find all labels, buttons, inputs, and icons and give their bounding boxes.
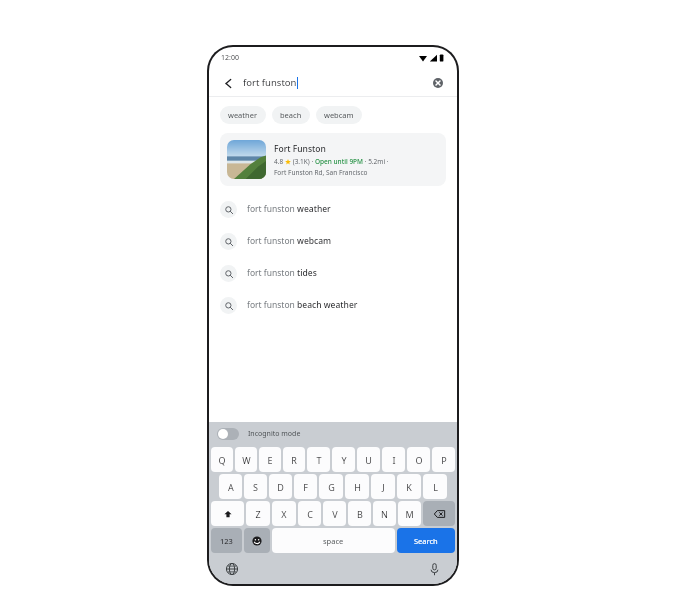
button[interactable]: C (298, 501, 321, 526)
button[interactable]: fort funston weather (209, 193, 457, 225)
staticText: fort funston tides (247, 267, 317, 279)
staticText: Z (255, 508, 261, 520)
staticText: webcam (324, 110, 354, 120)
button[interactable]: Y (332, 447, 355, 472)
staticText: Fort Funston (274, 143, 326, 155)
staticText: beach (280, 110, 302, 120)
button[interactable]: Incognito mode (217, 428, 239, 440)
button[interactable]: O (407, 447, 430, 472)
staticText: U (365, 454, 372, 466)
button[interactable]: Shift (211, 501, 244, 526)
button[interactable]: I (382, 447, 405, 472)
button[interactable]: Search (397, 528, 455, 553)
staticText: Q (218, 454, 226, 466)
staticText: P (441, 454, 447, 466)
button[interactable]: N (373, 501, 396, 526)
staticText: fort funston (243, 76, 297, 89)
button[interactable]: Change keyboard language (223, 560, 241, 578)
staticText: R (291, 454, 297, 466)
button[interactable]: U (357, 447, 380, 472)
button[interactable]: webcam (316, 106, 362, 124)
staticText: Fort Funston Rd, San Francisco (274, 168, 368, 177)
button[interactable]: M (398, 501, 421, 526)
staticText: Y (341, 454, 347, 466)
staticText: weather (228, 110, 258, 120)
staticText: B (357, 508, 363, 520)
button[interactable]: weather (220, 106, 266, 124)
button[interactable]: Emoji (244, 528, 270, 553)
button[interactable]: Back (220, 75, 236, 91)
staticText: A (228, 481, 234, 493)
staticText: G (328, 481, 335, 493)
button[interactable]: fort funston tides (209, 257, 457, 289)
button[interactable]: T (307, 447, 330, 472)
button[interactable]: Space (272, 528, 395, 553)
staticText: 123 (220, 536, 233, 546)
button[interactable]: X (272, 501, 296, 526)
button[interactable]: Z (246, 501, 270, 526)
button[interactable]: G (319, 474, 343, 499)
button[interactable]: Backspace (423, 501, 455, 526)
staticText: H (354, 481, 361, 493)
staticText: K (406, 481, 412, 493)
staticText: fort funston webcam (247, 235, 332, 247)
staticText: J (382, 481, 385, 493)
button[interactable]: B (348, 501, 371, 526)
staticText: L (433, 481, 438, 493)
button[interactable]: F (294, 474, 317, 499)
button[interactable]: L (423, 474, 447, 499)
staticText: space (323, 536, 344, 546)
staticText: F (303, 481, 308, 493)
staticText: V (332, 508, 338, 520)
button[interactable]: H (345, 474, 369, 499)
button[interactable]: Q (211, 447, 233, 472)
staticText: O (415, 454, 423, 466)
staticText: fort funston beach weather (247, 299, 358, 311)
staticText: Search (414, 536, 438, 546)
staticText: I (392, 454, 396, 466)
staticText: fort funston weather (247, 203, 331, 215)
button[interactable]: Fort Funston (220, 133, 446, 186)
staticText: E (267, 454, 273, 466)
button[interactable]: D (269, 474, 292, 499)
staticText: (3.1K) · Open until 9PM · 5.2mi · (291, 157, 389, 166)
button[interactable]: Numbers (211, 528, 242, 553)
staticText: S (253, 481, 258, 493)
button[interactable]: fort funston webcam (209, 225, 457, 257)
staticText: C (307, 508, 313, 520)
button[interactable]: fort funston beach weather (209, 289, 457, 321)
staticText: T (316, 454, 322, 466)
button[interactable]: S (244, 474, 267, 499)
staticText: D (277, 481, 284, 493)
button[interactable]: Voice input (425, 560, 443, 578)
staticText: W (242, 454, 251, 466)
button[interactable]: K (397, 474, 421, 499)
button[interactable]: beach (272, 106, 310, 124)
staticText: X (281, 508, 287, 520)
button[interactable]: E (259, 447, 281, 472)
staticText: 12:00 (221, 53, 239, 63)
button[interactable]: P (432, 447, 455, 472)
button[interactable]: W (235, 447, 257, 472)
button[interactable]: V (323, 501, 346, 526)
staticText: N (381, 508, 388, 520)
button[interactable]: R (283, 447, 305, 472)
staticText: 4.8 (274, 157, 284, 166)
staticText: Incognito mode (248, 429, 301, 439)
button[interactable]: J (371, 474, 395, 499)
staticText: M (405, 508, 414, 520)
button[interactable]: A (219, 474, 242, 499)
button[interactable]: Clear search (429, 74, 446, 91)
